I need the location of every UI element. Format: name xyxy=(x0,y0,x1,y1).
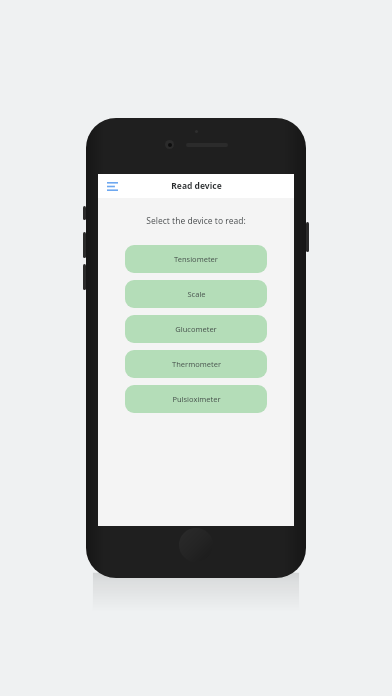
button[interactable]: Pulsioximeter xyxy=(125,385,267,413)
button[interactable]: Tensiometer xyxy=(125,245,267,273)
button[interactable]: Home xyxy=(179,528,213,562)
staticText: Tensiometer xyxy=(174,254,218,264)
staticText: Select the device to read: xyxy=(146,215,246,227)
button[interactable]: Open navigation menu xyxy=(104,178,120,194)
button[interactable]: Scale xyxy=(125,280,267,308)
staticText: Pulsioximeter xyxy=(172,394,221,404)
staticText: Glucometer xyxy=(175,324,217,334)
staticText: Read device xyxy=(171,180,222,192)
button[interactable]: Glucometer xyxy=(125,315,267,343)
staticText: Scale xyxy=(187,289,206,299)
button[interactable]: Thermometer xyxy=(125,350,267,378)
staticText: Thermometer xyxy=(172,359,221,369)
